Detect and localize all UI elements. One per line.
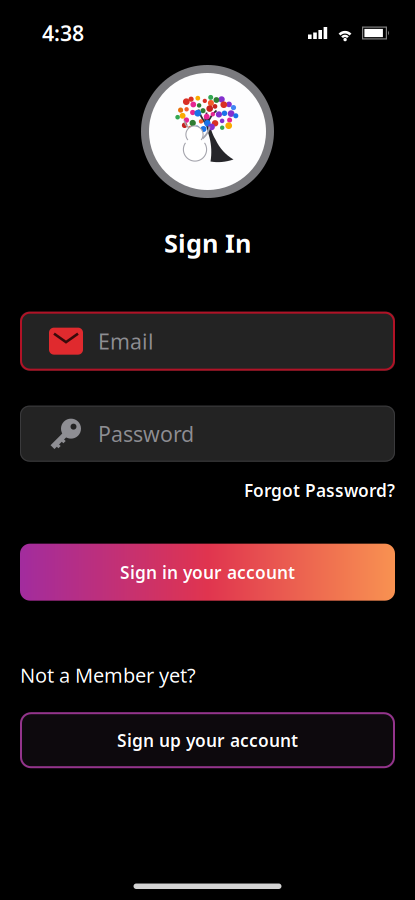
staticText: Sign up your account bbox=[117, 729, 298, 752]
button[interactable]: Forgot Password? bbox=[244, 479, 395, 502]
button[interactable]: Password bbox=[20, 406, 395, 462]
staticText: Forgot Password? bbox=[244, 479, 395, 502]
staticText: Email bbox=[98, 327, 154, 355]
staticText: Sign In bbox=[164, 226, 251, 260]
staticText: Not a Member yet? bbox=[20, 662, 196, 688]
button[interactable]: Sign in your account bbox=[20, 544, 395, 601]
staticText: Sign in your account bbox=[120, 561, 295, 584]
button[interactable]: Sign up your account bbox=[20, 712, 395, 768]
button[interactable]: Email bbox=[20, 312, 395, 371]
staticText: 4:38 bbox=[42, 19, 84, 47]
staticText: Password bbox=[98, 419, 194, 448]
